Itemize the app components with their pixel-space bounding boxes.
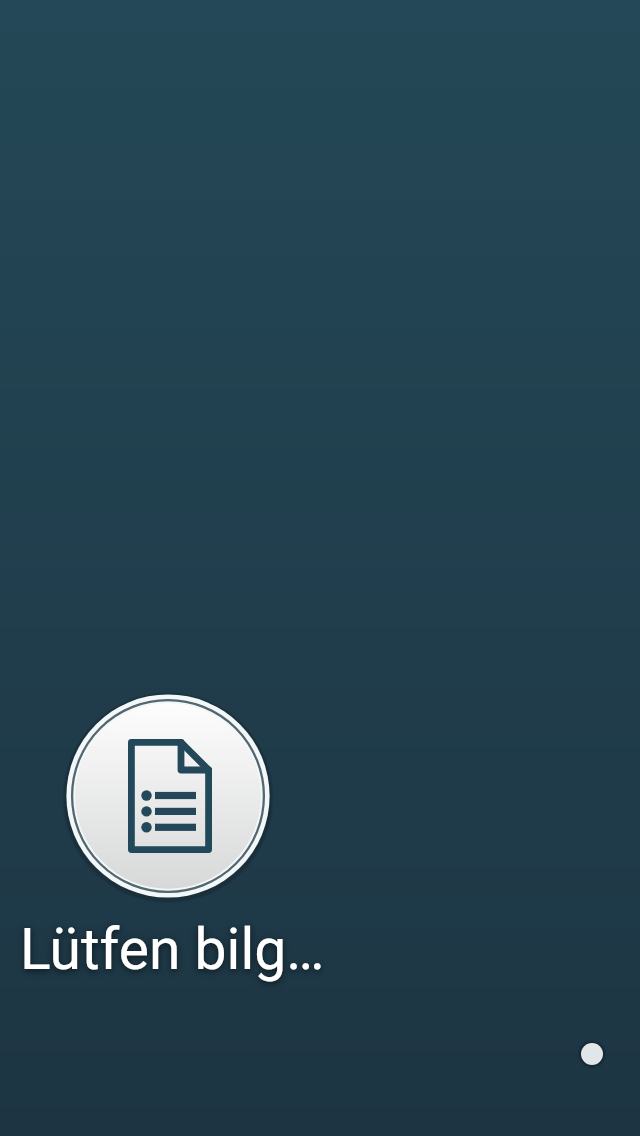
button[interactable]: Page indicator (573, 1035, 611, 1073)
button[interactable]: Lütfen bilgilendirme (60, 688, 276, 904)
staticText: Lütfen bilg… (20, 916, 325, 983)
